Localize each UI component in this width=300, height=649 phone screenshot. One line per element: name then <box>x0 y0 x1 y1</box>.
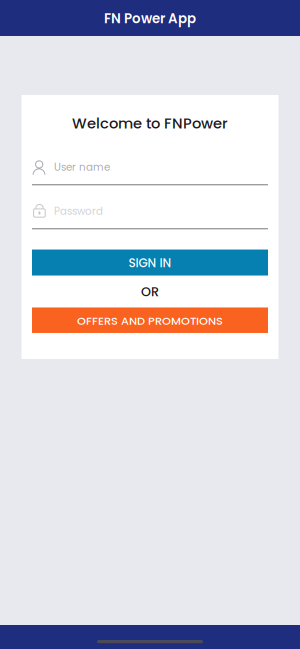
button[interactable]: SIGN IN <box>32 249 268 275</box>
staticText: User name <box>54 160 110 174</box>
staticText: FN Power App <box>104 9 196 28</box>
staticText: Password <box>54 204 103 218</box>
staticText: OFFERS AND PROMOTIONS <box>77 313 223 329</box>
staticText: OR <box>141 283 159 301</box>
staticText: Welcome to FNPower <box>72 113 228 133</box>
button[interactable]: OFFERS AND PROMOTIONS <box>32 307 268 333</box>
staticText: SIGN IN <box>128 255 171 271</box>
